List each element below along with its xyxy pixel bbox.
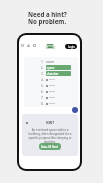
button[interactable]: 4. <box>24 77 78 82</box>
button[interactable]: 2. <box>24 65 78 70</box>
staticText: Auto-fill Next <box>41 145 59 149</box>
button[interactable]: 5. <box>24 83 78 88</box>
button[interactable]: 8. <box>24 101 78 106</box>
button[interactable]: Assistant <box>72 107 78 113</box>
button[interactable]: Login <box>65 44 77 49</box>
staticText: 3. <box>41 72 44 76</box>
staticText: HINT <box>22 121 78 125</box>
button[interactable]: Auto-fill Next <box>39 143 61 150</box>
staticText: 2. <box>41 66 44 70</box>
button[interactable]: 1. <box>24 59 78 64</box>
staticText: Need a hint? <box>28 10 67 18</box>
staticText: 5. <box>41 84 44 88</box>
staticText: 6. <box>41 90 44 94</box>
staticText: 8. <box>41 102 44 106</box>
staticText: No problem. <box>28 17 67 25</box>
staticText: 4. <box>41 78 44 82</box>
staticText: chamber <box>46 72 59 76</box>
staticText: 1. <box>41 60 44 64</box>
button[interactable]: 7. <box>24 95 78 100</box>
staticText: room <box>46 60 55 64</box>
staticText: space <box>46 66 55 70</box>
staticText: Login <box>68 45 75 49</box>
staticText: An enclosed space within a building, oft… <box>28 128 72 144</box>
staticText: 7. <box>41 96 44 100</box>
button[interactable]: 6. <box>24 89 78 94</box>
button[interactable]: 3. <box>24 71 78 76</box>
button[interactable]: Close <box>25 121 29 125</box>
